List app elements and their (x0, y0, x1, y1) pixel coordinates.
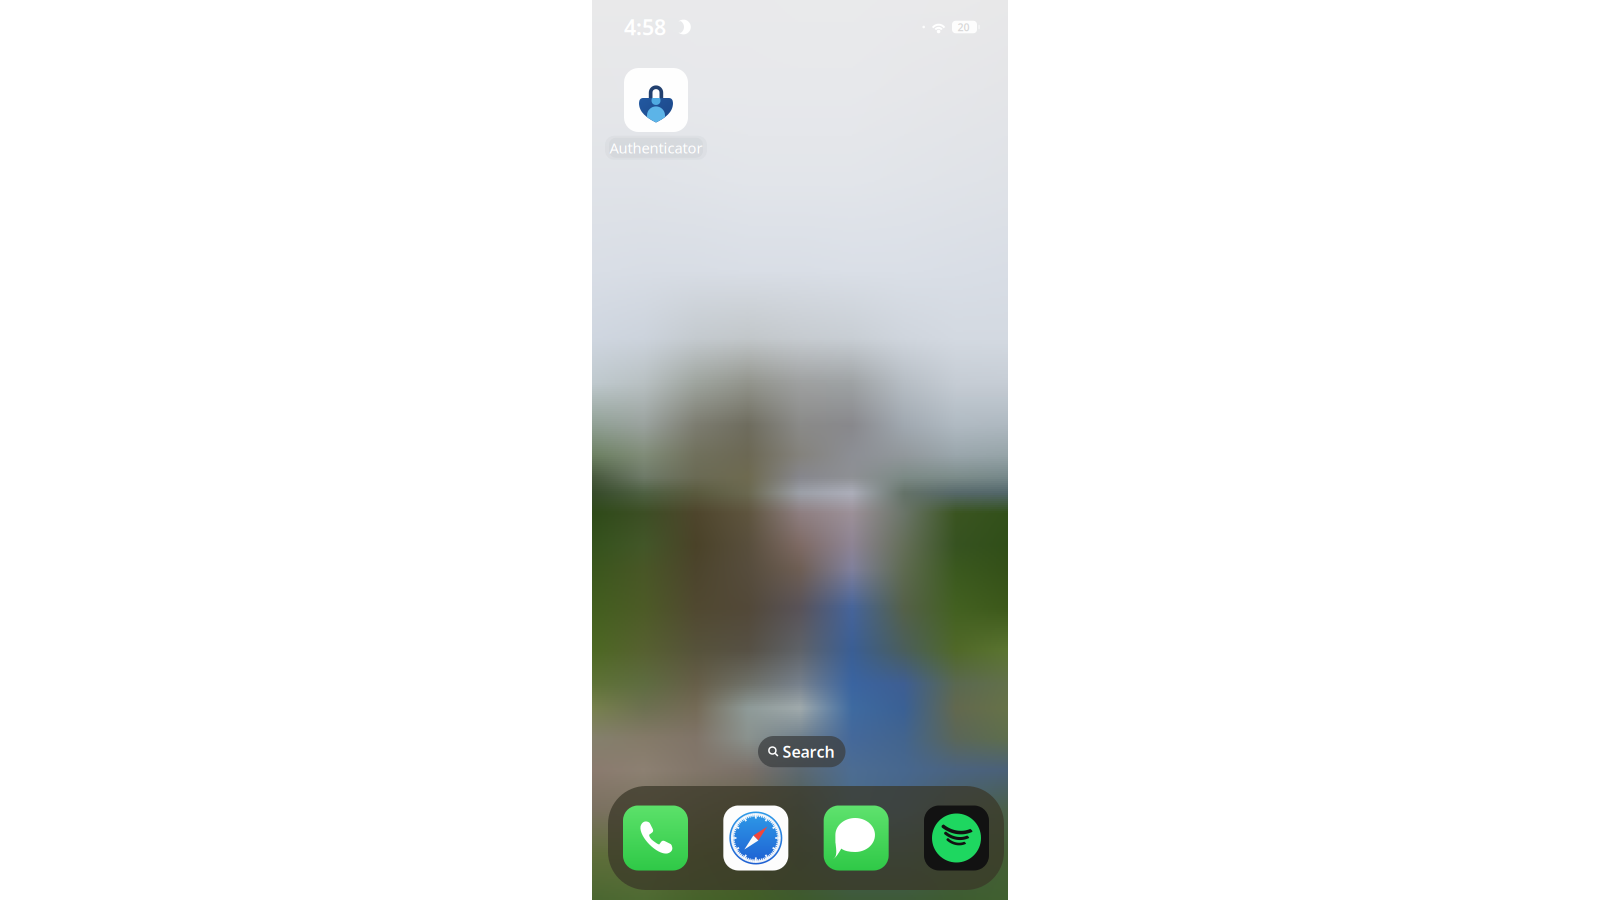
button[interactable]: Phone (623, 805, 688, 870)
button[interactable]: Search (758, 736, 845, 767)
button[interactable]: Messages (824, 805, 889, 870)
button[interactable]: Spotify (924, 805, 989, 870)
staticText: Authenticator (609, 138, 702, 157)
staticText: 20 (957, 20, 969, 34)
staticText: Search (782, 741, 834, 762)
button[interactable]: Safari (723, 805, 788, 870)
button[interactable]: Authenticator (600, 68, 712, 159)
staticText: 4:58 (624, 13, 666, 41)
